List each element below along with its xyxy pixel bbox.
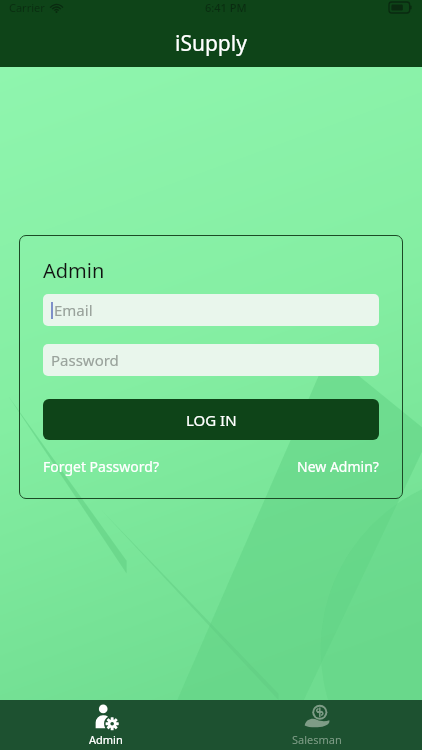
staticText: Salesman — [292, 732, 342, 747]
staticText: LOG IN — [186, 410, 237, 430]
button[interactable]: Salesman — [211, 700, 422, 750]
staticText: Admin — [89, 732, 123, 747]
button[interactable]: Email — [43, 294, 379, 326]
button[interactable]: LOG IN — [43, 399, 379, 440]
staticText: Password — [51, 350, 119, 370]
button[interactable]: Password — [43, 344, 379, 376]
staticText: iSupply — [175, 29, 247, 58]
other: Salesman — [303, 703, 331, 731]
staticText: Forget Password? — [43, 457, 159, 476]
staticText: Admin — [43, 257, 105, 284]
staticText: New Admin? — [297, 457, 379, 476]
button[interactable]: Forget Password? — [43, 457, 159, 476]
staticText: Carrier — [9, 0, 45, 15]
button[interactable]: Admin — [0, 700, 211, 750]
staticText: 6:41 PM — [205, 0, 247, 15]
button[interactable]: New Admin? — [297, 457, 379, 476]
other: Admin — [92, 703, 120, 731]
staticText: Email — [54, 300, 93, 320]
